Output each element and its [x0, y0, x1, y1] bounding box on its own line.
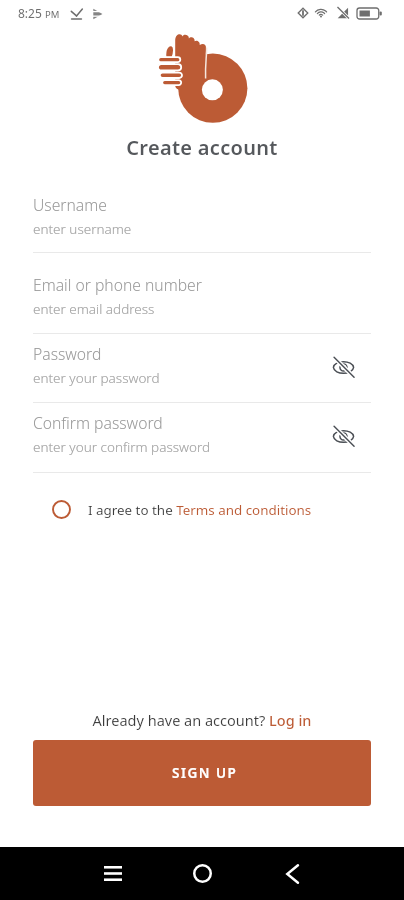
- button[interactable]: Back: [262, 847, 322, 900]
- staticText: Email or phone number: [33, 274, 202, 295]
- button[interactable]: Recent apps: [83, 847, 143, 900]
- staticText: I agree to the Terms and conditions: [88, 501, 312, 519]
- button[interactable]: I agree to the Terms and conditions: [52, 500, 371, 519]
- staticText: Create account: [0, 134, 404, 161]
- staticText: enter username: [33, 220, 132, 238]
- staticText: Username: [33, 194, 107, 215]
- staticText: enter your confirm password: [33, 438, 211, 456]
- button[interactable]: Home: [172, 847, 232, 900]
- button[interactable]: Show password: [328, 421, 358, 451]
- staticText: enter email address: [33, 300, 155, 318]
- button[interactable]: SIGN UP: [33, 740, 371, 806]
- staticText: PM: [45, 8, 60, 21]
- staticText: SIGN UP: [172, 764, 238, 782]
- staticText: Confirm password: [33, 412, 163, 433]
- button[interactable]: Show password: [328, 352, 358, 382]
- staticText: Already have an account? Log in: [0, 710, 404, 730]
- staticText: enter your password: [33, 369, 160, 387]
- staticText: 8:25: [18, 5, 42, 21]
- staticText: Password: [33, 343, 102, 364]
